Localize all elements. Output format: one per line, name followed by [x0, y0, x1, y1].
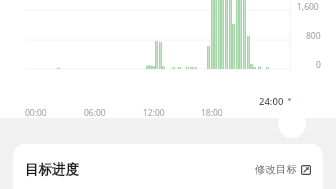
button[interactable]: 修改目标: [253, 161, 313, 178]
staticText: 18:00: [201, 107, 223, 119]
staticText: 06:00: [84, 107, 106, 119]
button[interactable]: 目标进度: [13, 144, 323, 189]
staticText: 12:00: [143, 107, 165, 119]
staticText: 目标进度: [25, 161, 79, 178]
staticText: 修改目标: [255, 163, 297, 176]
staticText: 800: [306, 30, 321, 42]
staticText: 24:00: [259, 95, 284, 108]
other: Edit goal: [301, 165, 311, 175]
staticText: 00:00: [25, 107, 47, 119]
staticText: 0: [316, 59, 321, 71]
staticText: 1,600: [297, 1, 319, 13]
